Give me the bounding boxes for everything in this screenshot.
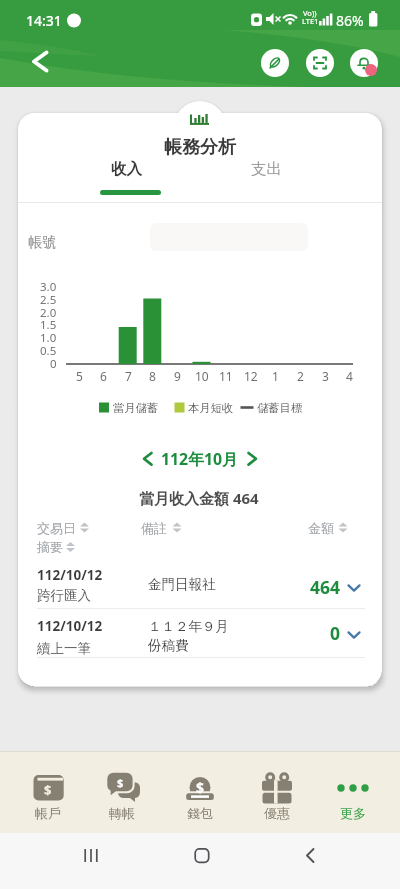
button[interactable] — [80, 156, 190, 198]
staticText: １１２年９月 — [148, 618, 229, 635]
staticText: 112年10月 — [161, 448, 238, 470]
staticText: 86% — [336, 11, 364, 30]
staticText: 112/10/12 — [37, 617, 103, 635]
staticText: 464 — [310, 575, 341, 599]
staticText: 0 — [330, 621, 341, 645]
staticText: 份稿費 — [148, 637, 189, 654]
staticText: 帳號 — [28, 234, 56, 252]
staticText: 帳務分析 — [164, 136, 236, 159]
staticText: $ — [44, 781, 52, 799]
staticText: 1.5 — [40, 317, 57, 333]
button[interactable] — [261, 49, 289, 77]
button[interactable] — [130, 444, 160, 472]
staticText: 更多 — [340, 805, 366, 821]
staticText: 10 — [195, 368, 209, 384]
button[interactable] — [66, 836, 116, 880]
staticText: 2.0 — [40, 305, 57, 321]
staticText: Vo)) — [303, 8, 317, 18]
staticText: $ — [117, 775, 124, 790]
staticText: 交易日 — [37, 520, 76, 536]
button[interactable] — [33, 515, 95, 559]
staticText: 備註 — [141, 520, 167, 536]
staticText: 1 — [272, 368, 279, 384]
staticText: 3.0 — [40, 279, 57, 295]
button[interactable] — [163, 753, 237, 831]
staticText: 0.5 — [40, 343, 57, 359]
staticText: 2.5 — [40, 292, 57, 308]
button[interactable] — [11, 753, 85, 831]
button[interactable] — [20, 48, 56, 78]
staticText: 金門日報社 — [148, 576, 216, 593]
staticText: 摘要 — [37, 539, 63, 555]
button[interactable] — [18, 609, 382, 657]
staticText: 8 — [149, 368, 156, 384]
staticText: 0 — [50, 356, 57, 372]
staticText: 當月儲蓄 — [113, 401, 159, 415]
button[interactable] — [177, 836, 227, 880]
staticText: 本月短收 — [188, 401, 234, 415]
staticText: 1.0 — [40, 330, 57, 346]
staticText: 優惠 — [264, 805, 290, 821]
staticText: 11 — [219, 368, 233, 384]
staticText: LTE1 — [302, 16, 319, 26]
staticText: 收入 — [111, 159, 142, 179]
staticText: 續上一筆 — [37, 640, 91, 657]
staticText: $ — [196, 778, 205, 797]
button[interactable] — [137, 515, 187, 541]
staticText: 跨行匯入 — [37, 587, 91, 604]
button[interactable] — [240, 753, 314, 831]
staticText: 轉帳 — [109, 805, 135, 821]
staticText: 2 — [297, 368, 304, 384]
staticText: 4 — [346, 368, 353, 384]
button[interactable] — [18, 563, 382, 609]
staticText: 帳戶 — [35, 805, 61, 821]
button[interactable] — [350, 49, 378, 77]
staticText: 5 — [76, 368, 83, 384]
staticText: 6 — [100, 368, 107, 384]
staticText: 14:31 — [26, 11, 62, 30]
staticText: 3 — [322, 368, 329, 384]
staticText: 當月收入金額 464 — [139, 488, 259, 508]
button[interactable] — [286, 836, 336, 880]
button[interactable] — [306, 49, 334, 77]
button[interactable] — [215, 156, 325, 198]
staticText: 支出 — [251, 159, 282, 179]
staticText: 儲蓄目標 — [257, 401, 303, 415]
button[interactable] — [85, 753, 159, 831]
button[interactable] — [316, 753, 390, 831]
staticText: 錢包 — [187, 805, 213, 821]
button[interactable] — [240, 444, 270, 472]
staticText: 7 — [125, 368, 132, 384]
staticText: 12 — [244, 368, 258, 384]
button[interactable] — [303, 515, 353, 541]
staticText: 112/10/12 — [37, 566, 103, 584]
staticText: 金額 — [308, 520, 334, 536]
staticText: 9 — [174, 368, 181, 384]
